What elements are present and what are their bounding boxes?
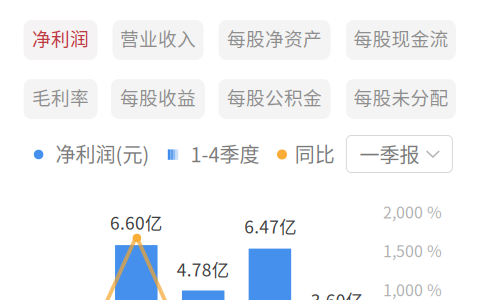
staticText: 1,000 % xyxy=(383,278,442,300)
button[interactable]: 每股公积金 xyxy=(218,79,330,119)
staticText: 每股现金流 xyxy=(353,24,448,51)
button[interactable]: 营业收入 xyxy=(112,20,203,60)
staticText: 一季报 xyxy=(359,139,419,168)
staticText: 净利润(元) xyxy=(55,139,149,168)
staticText: 每股收益 xyxy=(120,83,196,110)
button[interactable]: 一季报 xyxy=(346,135,452,172)
staticText: 6.60亿 xyxy=(110,210,162,235)
staticText: 同比 xyxy=(295,139,335,168)
staticText: 6.47亿 xyxy=(244,213,296,239)
button[interactable]: 毛利率 xyxy=(24,79,98,119)
staticText: 3.60亿 xyxy=(311,287,363,300)
staticText: 净利润 xyxy=(32,24,89,51)
button[interactable]: 每股未分配 xyxy=(346,79,456,119)
staticText: 4.78亿 xyxy=(177,256,229,282)
staticText: 每股未分配 xyxy=(353,83,448,110)
staticText: 毛利率 xyxy=(32,83,89,110)
button[interactable]: 每股净资产 xyxy=(218,20,330,60)
staticText: 2,000 % xyxy=(383,200,442,223)
staticText: 1-4季度 xyxy=(190,139,259,168)
staticText: 每股公积金 xyxy=(227,83,322,110)
button[interactable]: 每股现金流 xyxy=(346,20,456,60)
staticText: 1,500 % xyxy=(383,239,442,262)
button[interactable]: 净利润 xyxy=(24,20,98,60)
button[interactable]: 每股收益 xyxy=(111,79,205,119)
staticText: 营业收入 xyxy=(120,24,196,51)
staticText: 每股净资产 xyxy=(227,24,322,51)
